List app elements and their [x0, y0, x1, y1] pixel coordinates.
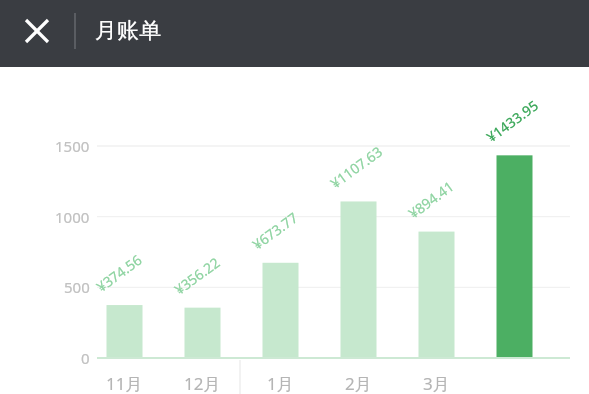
button[interactable]: Close [9, 3, 65, 59]
